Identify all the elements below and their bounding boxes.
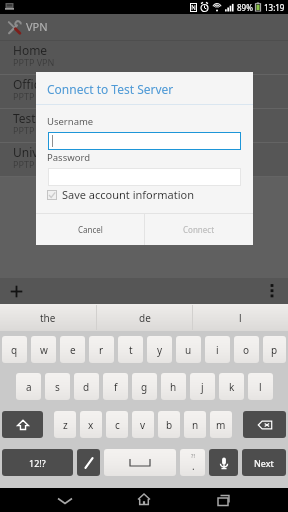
staticText: y — [157, 343, 163, 357]
button[interactable]: d — [74, 373, 99, 400]
staticText: PPTP VPN — [13, 124, 55, 136]
button[interactable]: f — [103, 373, 128, 400]
button[interactable]: a — [16, 373, 41, 400]
staticText: f — [114, 380, 118, 394]
button[interactable] — [48, 168, 241, 186]
button[interactable]: l — [248, 373, 273, 400]
button[interactable]: e — [60, 336, 85, 363]
staticText: Test — [13, 110, 36, 126]
button[interactable]: u — [176, 336, 201, 363]
button[interactable]: z — [54, 411, 76, 438]
staticText: a — [26, 380, 32, 394]
staticText: Save account information — [62, 187, 195, 202]
button[interactable]: r — [89, 336, 114, 363]
button[interactable]: Connect — [145, 214, 253, 245]
staticText: p — [271, 343, 278, 357]
staticText: v — [140, 418, 146, 432]
button[interactable]: m — [210, 411, 232, 438]
button[interactable]: x — [80, 411, 102, 438]
button[interactable]: Next — [242, 449, 286, 476]
button[interactable]: More options — [262, 278, 288, 304]
staticText: Home — [13, 42, 48, 58]
staticText: Cancel — [78, 224, 103, 235]
button[interactable]: s — [45, 373, 70, 400]
staticText: q — [11, 343, 18, 357]
staticText: e — [70, 343, 76, 357]
staticText: d — [83, 380, 90, 394]
staticText: 12!? — [29, 457, 46, 469]
staticText: Username — [47, 115, 94, 128]
staticText: g — [141, 380, 148, 394]
button[interactable]: Office — [0, 75, 288, 108]
staticText: t — [129, 343, 133, 357]
button[interactable]: c — [106, 411, 128, 438]
button[interactable] — [48, 132, 241, 150]
button[interactable]: Cancel — [36, 214, 144, 245]
staticText: PPTP VPN — [13, 56, 55, 68]
button[interactable]: Save account information — [47, 187, 195, 202]
staticText: c — [115, 418, 120, 432]
staticText: PPTP VPN — [13, 90, 55, 102]
button[interactable]: 12!? — [2, 449, 73, 476]
button[interactable]: h — [161, 373, 186, 400]
staticText: VPN — [26, 19, 48, 34]
staticText: Password — [47, 151, 90, 164]
staticText: i — [216, 343, 219, 357]
staticText: m — [216, 418, 226, 432]
staticText: h — [170, 380, 177, 394]
button[interactable]: p — [263, 336, 286, 363]
button[interactable]: q — [2, 336, 27, 363]
staticText: 89% — [237, 2, 253, 13]
staticText: PPTP VPN — [13, 158, 55, 170]
staticText: de — [139, 311, 151, 325]
button[interactable]: o — [234, 336, 259, 363]
staticText: z — [63, 418, 68, 432]
staticText: l — [239, 311, 242, 325]
button[interactable]: w — [31, 336, 56, 363]
staticText: w — [40, 343, 48, 357]
staticText: o — [243, 343, 250, 357]
button[interactable]: j — [190, 373, 215, 400]
button[interactable]: v — [132, 411, 154, 438]
button[interactable]: ?! — [180, 449, 205, 476]
staticText: University — [13, 144, 70, 160]
button[interactable]: g — [132, 373, 157, 400]
button[interactable]: de — [97, 304, 192, 331]
staticText: . — [192, 459, 195, 473]
button[interactable]: Voice input — [209, 449, 238, 476]
button[interactable]: Add VPN profile — [0, 278, 30, 304]
button[interactable]: y — [147, 336, 172, 363]
staticText: r — [99, 343, 104, 357]
staticText: Next — [254, 457, 274, 469]
button[interactable]: Handwriting — [77, 449, 100, 476]
button[interactable]: Back — [50, 488, 80, 512]
button[interactable]: b — [158, 411, 180, 438]
button[interactable]: t — [118, 336, 143, 363]
button[interactable]: Home — [129, 488, 159, 512]
staticText: k — [229, 380, 235, 394]
button[interactable]: Delete — [243, 411, 286, 438]
staticText: n — [192, 418, 199, 432]
staticText: s — [55, 380, 60, 394]
staticText: 13:19 — [264, 2, 285, 13]
staticText: Connect to Test Server — [47, 81, 174, 97]
button[interactable]: l — [193, 304, 288, 331]
staticText: Office — [13, 76, 47, 92]
button[interactable]: i — [205, 336, 230, 363]
staticText: x — [88, 418, 94, 432]
button[interactable]: the — [0, 304, 96, 331]
button[interactable]: Recent apps — [209, 488, 239, 512]
button[interactable]: Space — [104, 449, 176, 476]
button[interactable]: Home — [0, 41, 288, 74]
button[interactable]: Test — [0, 109, 288, 142]
staticText: j — [201, 380, 204, 394]
staticText: Connect — [183, 224, 215, 235]
button[interactable]: University — [0, 143, 288, 176]
button[interactable]: Shift — [2, 411, 43, 438]
button[interactable]: k — [219, 373, 244, 400]
staticText: u — [185, 343, 192, 357]
staticText: b — [166, 418, 173, 432]
staticText: the — [40, 311, 56, 325]
staticText: ?! — [191, 452, 195, 459]
button[interactable]: n — [184, 411, 206, 438]
